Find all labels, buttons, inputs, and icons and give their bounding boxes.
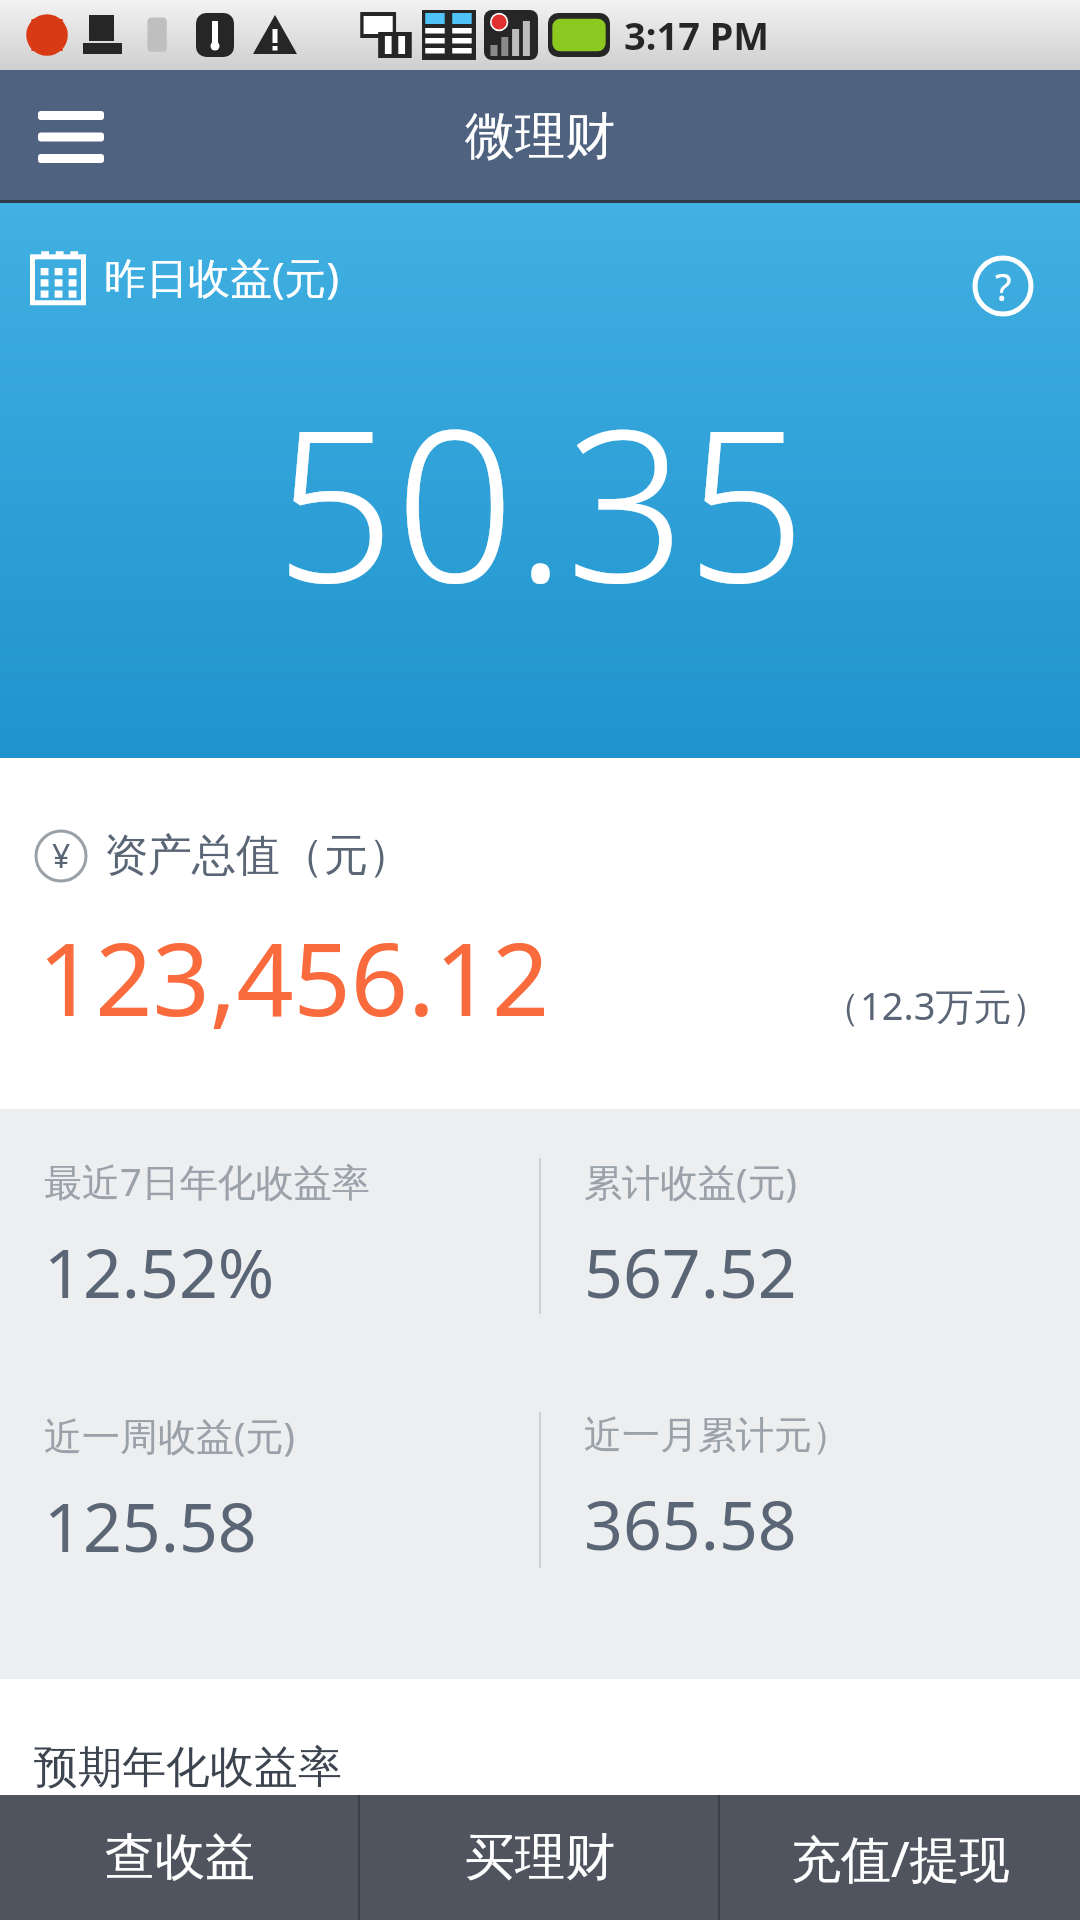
staticText: 365.58 (584, 1477, 797, 1570)
button[interactable]: 查收益 (0, 1795, 360, 1920)
staticText: 最近7日年化收益率 (44, 1155, 370, 1207)
button[interactable]: 最近7日年化收益率 (0, 1109, 540, 1363)
staticText: ? (995, 260, 1012, 312)
button[interactable]: 充值/提现 (720, 1795, 1080, 1920)
staticText: 预期年化收益率 (34, 1740, 342, 1795)
staticText: 567.52 (584, 1225, 797, 1318)
staticText: 123,456.12 (38, 909, 550, 1045)
button[interactable]: 累计收益(元) (540, 1109, 1080, 1363)
staticText: 买理财 (465, 1826, 615, 1889)
staticText: 充值/提现 (791, 1824, 1010, 1892)
staticText: 12.52% (44, 1225, 275, 1318)
staticText: 50.35 (275, 358, 806, 644)
button[interactable]: 近一月累计元） (540, 1363, 1080, 1617)
button[interactable]: Help (958, 241, 1048, 331)
staticText: 资产总值（元） (104, 828, 412, 883)
staticText: 近一周收益(元) (44, 1409, 295, 1461)
staticText: 昨日收益(元) (104, 248, 340, 305)
staticText: 近一月累计元） (584, 1411, 850, 1459)
button[interactable]: 近一周收益(元) (0, 1363, 540, 1617)
staticText: 3:17 PM (624, 9, 770, 61)
staticText: 微理财 (465, 105, 615, 168)
staticText: 累计收益(元) (584, 1155, 797, 1207)
button[interactable]: Menu (28, 94, 114, 180)
staticText: （12.3万元） (822, 979, 1050, 1031)
staticText: ¥ (52, 834, 71, 878)
staticText: 125.58 (44, 1479, 257, 1572)
button[interactable]: 买理财 (360, 1795, 720, 1920)
staticText: 查收益 (105, 1826, 255, 1889)
